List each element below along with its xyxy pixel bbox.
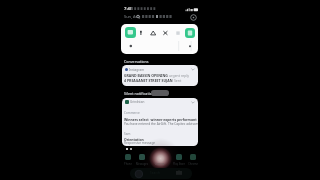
button[interactable]: Search: [130, 168, 192, 179]
staticText: 7:48: [124, 6, 133, 12]
button[interactable]: Phone: [125, 154, 131, 160]
staticText: Play Store: [171, 162, 187, 166]
button[interactable]: Clear all: [151, 90, 169, 96]
button[interactable]: Grindstan: [122, 98, 198, 146]
staticText: Winners select winner experts performant…: [124, 117, 198, 122]
staticText: Phone: [120, 162, 136, 166]
staticText: 4 PREAGANET STREET SUJAN: [124, 78, 173, 83]
staticText: Responsive message: [124, 141, 156, 145]
staticText: Chrome: [185, 162, 201, 166]
button[interactable]: Play Store: [176, 154, 182, 160]
staticText: Conversations: [124, 59, 149, 64]
staticText: GRAND BASSIN OPENING: [124, 73, 168, 78]
staticText: Sam: [124, 132, 131, 136]
staticText: Silent notifications: [124, 91, 156, 96]
button[interactable]: Internet: [125, 27, 136, 38]
staticText: Sun, Aug: [124, 14, 141, 19]
staticText: Instagram: [129, 68, 145, 72]
button[interactable]: Messages: [139, 154, 145, 160]
staticText: Messages: [134, 162, 150, 166]
staticText: Camera: [151, 162, 168, 166]
staticText: urgent reply: [168, 73, 190, 78]
button[interactable]: Instagram: [122, 65, 198, 86]
button[interactable]: Chrome: [190, 154, 196, 160]
button[interactable]: Settings: [190, 14, 197, 21]
staticText: Sent: [173, 78, 182, 83]
staticText: Commerce: [124, 111, 140, 115]
button[interactable]: Bluetooth: [185, 28, 195, 38]
staticText: You have entered the AirGift. The Capite…: [124, 122, 198, 126]
staticText: Grindstan: [130, 100, 145, 104]
staticText: Orientation: [124, 137, 144, 142]
